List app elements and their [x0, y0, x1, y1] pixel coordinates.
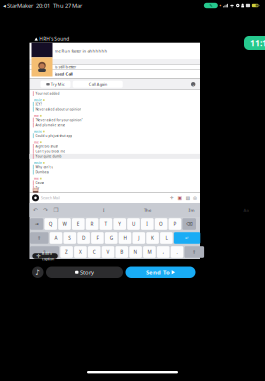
staticText: Can't you block me	[35, 149, 65, 153]
staticText: Dumbass	[35, 170, 48, 174]
staticText: Story	[80, 268, 94, 276]
staticText: ⇧	[192, 249, 196, 255]
staticText: ⇥	[35, 221, 39, 227]
button[interactable]: T	[100, 218, 112, 230]
staticText: "Never asked for your opinion"	[35, 118, 82, 122]
button[interactable]: D	[77, 232, 90, 244]
staticText: Your quite dumb	[35, 154, 61, 158]
staticText: F	[96, 235, 98, 241]
button[interactable]: K	[146, 232, 159, 244]
button[interactable]: .	[171, 246, 183, 258]
staticText: C	[93, 249, 96, 255]
button[interactable]: A	[50, 232, 62, 244]
staticText: me	[34, 140, 39, 144]
button[interactable]: U	[127, 218, 140, 230]
button[interactable]: Key	[174, 232, 200, 244]
staticText: ⇧	[37, 235, 41, 241]
staticText: M	[147, 249, 151, 255]
button[interactable]: P	[169, 218, 181, 230]
staticText: I	[103, 207, 104, 213]
staticText: Y	[118, 221, 121, 227]
button[interactable]: Story	[46, 266, 123, 278]
button[interactable]: J	[132, 232, 145, 244]
staticText: Never asked about ur opinion	[35, 107, 81, 111]
staticText: B	[120, 249, 123, 255]
button[interactable]: Key	[184, 246, 204, 258]
staticText: Could u pls just shut app	[35, 134, 72, 138]
staticText: O	[159, 221, 163, 227]
staticText: ⌫	[186, 221, 192, 227]
staticText: G	[110, 235, 113, 241]
staticText: P	[173, 221, 176, 227]
button[interactable]: Modifier	[30, 232, 48, 244]
staticText: rosie	[34, 161, 42, 165]
button[interactable]: B	[115, 246, 128, 258]
staticText: ↶	[33, 207, 38, 213]
staticText: ↷	[43, 207, 48, 213]
button[interactable]: Modifier	[30, 218, 43, 230]
button[interactable]: Call Again	[73, 81, 123, 88]
staticText: me	[34, 176, 39, 181]
staticText: I'm	[188, 207, 194, 213]
button[interactable]: ,	[157, 246, 169, 258]
button[interactable]: X	[74, 246, 87, 258]
button[interactable]: M	[143, 246, 156, 258]
staticText: Add a caption	[42, 251, 54, 261]
staticText: ❐	[53, 207, 58, 213]
staticText: rosie	[34, 98, 42, 102]
button[interactable]: ✛	[32, 253, 58, 259]
staticText: Ty	[35, 186, 39, 190]
button[interactable]: N	[129, 246, 142, 258]
staticText: L	[165, 235, 167, 241]
staticText: rosie	[34, 129, 42, 134]
button[interactable]: Try Mic	[40, 81, 70, 88]
staticText: W	[62, 221, 66, 227]
staticText: K	[151, 235, 154, 241]
button[interactable]: W	[58, 218, 71, 230]
staticText: ◂ StarMaker 20:01 Thu 27 Mar	[3, 2, 82, 9]
staticText: issed Call	[54, 71, 72, 77]
button[interactable]: L	[160, 232, 173, 244]
staticText: ♪	[35, 268, 40, 276]
staticText: Search Mail	[41, 195, 60, 200]
staticText: HRH's Sound	[39, 36, 69, 42]
staticText: A	[54, 235, 57, 241]
button[interactable]: Key	[182, 218, 196, 230]
button[interactable]: Return to call	[244, 36, 265, 50]
staticText: 11:15	[250, 37, 265, 49]
staticText: Cause	[35, 181, 44, 185]
button[interactable]: G	[105, 232, 117, 244]
button[interactable]: O	[155, 218, 167, 230]
button[interactable]: Send To	[125, 266, 195, 278]
button[interactable]: Q	[44, 218, 57, 230]
button[interactable]: Z	[60, 246, 73, 258]
staticText: is still better	[54, 64, 76, 69]
staticText: D	[82, 235, 85, 241]
button[interactable]: Modifier	[30, 246, 59, 258]
button[interactable]: C	[88, 246, 100, 258]
staticText: ⌄	[192, 82, 195, 87]
staticText: ✛	[170, 195, 174, 200]
button[interactable]: F	[91, 232, 104, 244]
staticText: me Run faster in ahhhhhh	[54, 48, 107, 54]
staticText: Aight bro shush	[35, 144, 58, 148]
staticText: ✛	[36, 253, 40, 259]
button[interactable]: Expand	[191, 82, 195, 87]
button[interactable]: H	[119, 232, 131, 244]
button[interactable]: V	[102, 246, 114, 258]
button[interactable]: R	[86, 218, 98, 230]
staticText: The	[144, 207, 151, 213]
button[interactable]: I	[141, 218, 154, 230]
staticText: H	[123, 235, 126, 241]
staticText: V	[106, 249, 109, 255]
button[interactable]: Y	[113, 218, 126, 230]
button[interactable]: E	[72, 218, 85, 230]
staticText: Q	[49, 221, 53, 227]
staticText: E	[77, 221, 80, 227]
button[interactable]: S	[63, 232, 76, 244]
staticText: N	[134, 249, 138, 255]
staticText: T	[104, 221, 107, 227]
staticText: Why can't u	[35, 165, 53, 169]
button[interactable]: Sounds	[32, 266, 43, 278]
staticText: ▤	[186, 195, 190, 200]
